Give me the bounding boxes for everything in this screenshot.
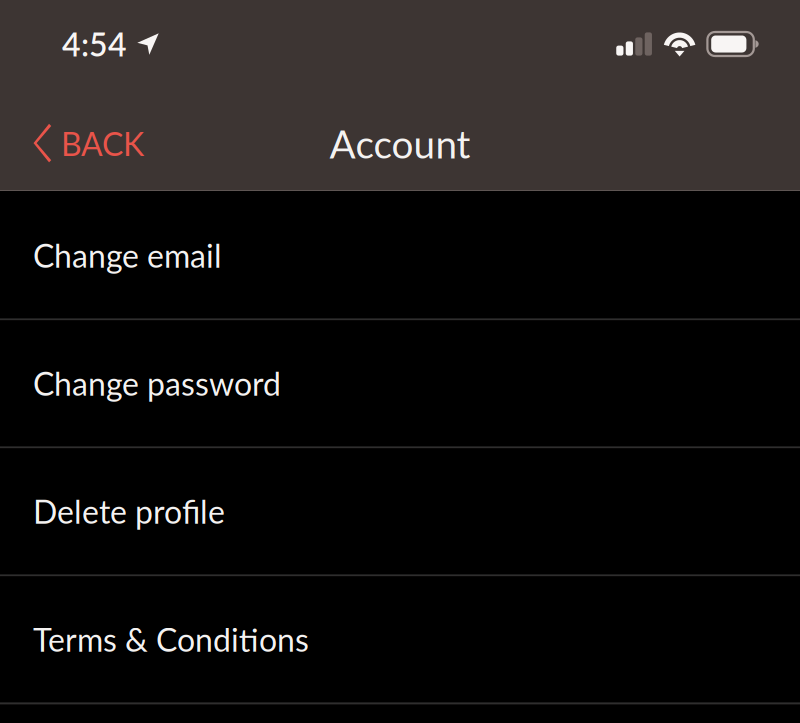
button[interactable]: Terms & Conditions xyxy=(0,576,800,704)
staticText: Account xyxy=(329,120,470,167)
staticText: Change email xyxy=(33,236,222,275)
staticText: Terms & Conditions xyxy=(33,620,309,659)
staticText: Change password xyxy=(33,364,281,403)
staticText: BACK xyxy=(61,124,144,163)
staticText: Delete profile xyxy=(33,492,225,531)
button[interactable]: Change email xyxy=(0,192,800,320)
button[interactable]: Change password xyxy=(0,320,800,448)
button[interactable]: Delete profile xyxy=(0,448,800,576)
staticText: 4:54 xyxy=(62,25,127,63)
button[interactable]: BACK xyxy=(0,108,162,179)
